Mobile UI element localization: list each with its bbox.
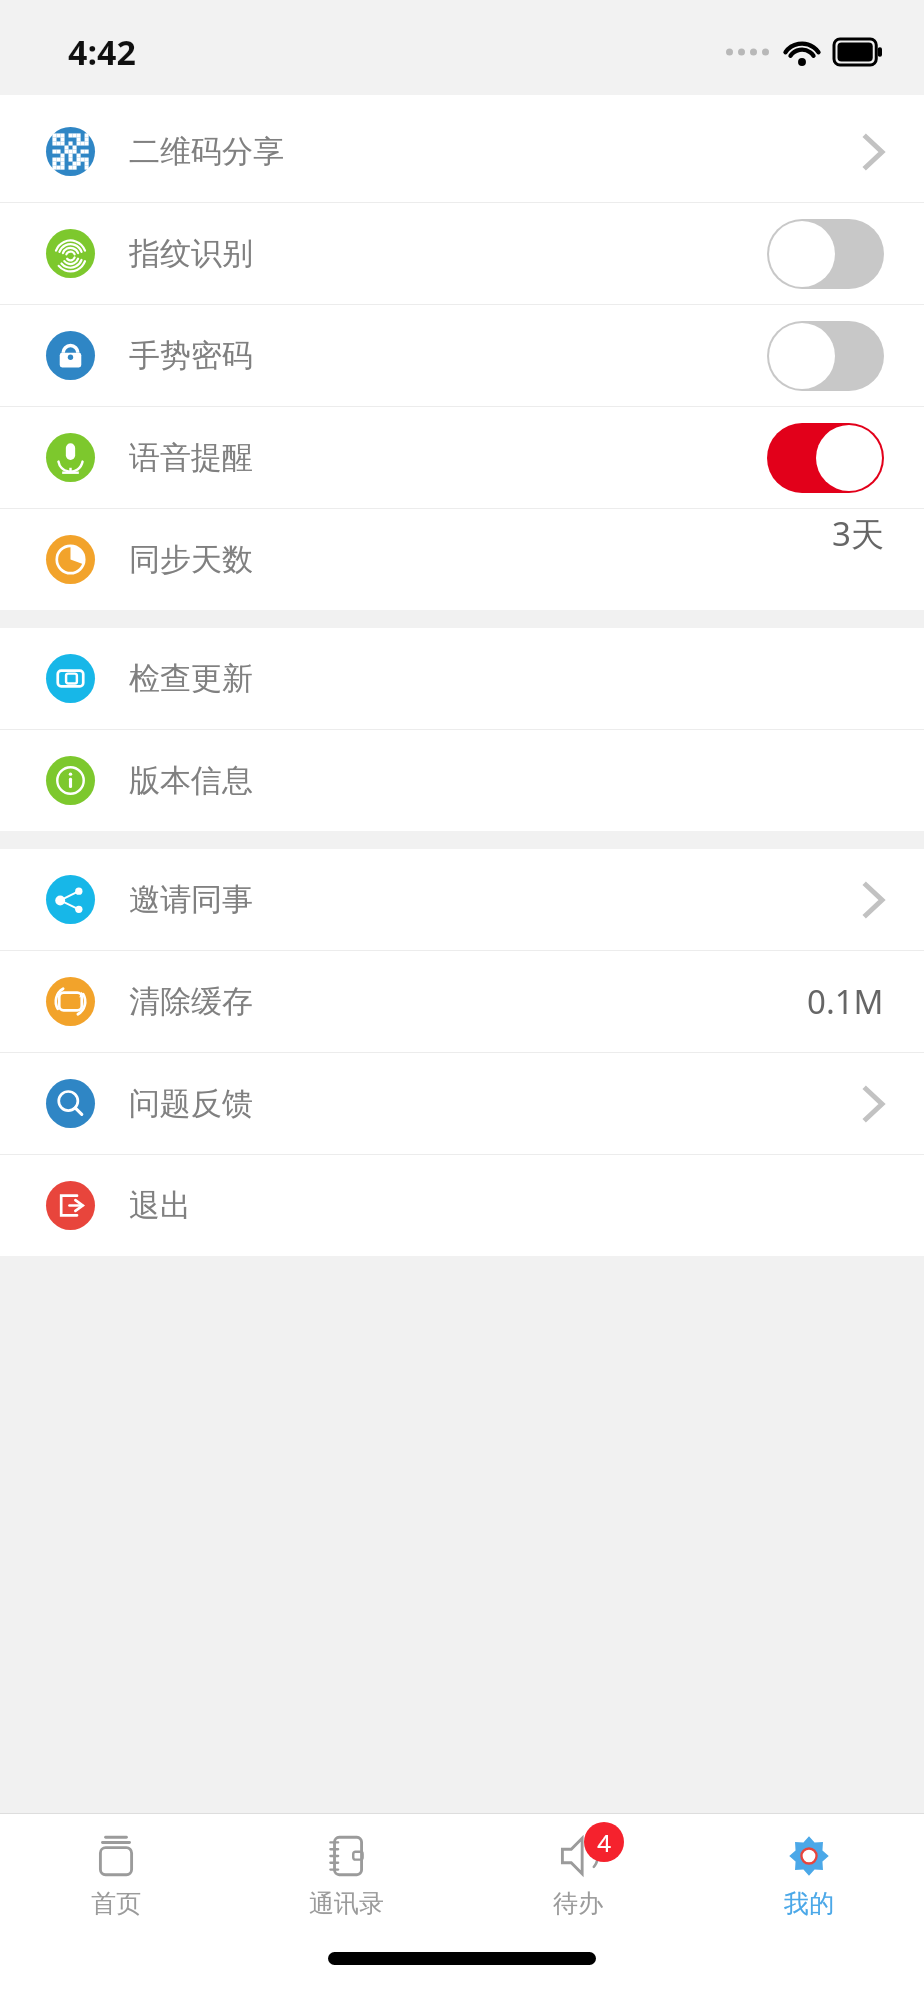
button[interactable]: 二维码分享 [0, 101, 924, 202]
staticText: 待办 [553, 1888, 603, 1919]
staticText: 检查更新 [129, 659, 253, 698]
button[interactable]: Toggle off [767, 219, 884, 289]
button[interactable]: 同步天数 [0, 509, 924, 610]
staticText: 手势密码 [129, 336, 253, 375]
staticText: 版本信息 [129, 761, 253, 800]
staticText: 语音提醒 [129, 438, 253, 477]
button[interactable]: 语音提醒 [0, 407, 924, 508]
staticText: 3天 [832, 511, 884, 556]
staticText: 4 [597, 1826, 611, 1859]
staticText: 通讯录 [309, 1888, 384, 1919]
button[interactable]: 手势密码 [0, 305, 924, 406]
staticText: 同步天数 [129, 540, 253, 579]
button[interactable]: 邀请同事 [0, 849, 924, 950]
staticText: 4:42 [68, 29, 136, 75]
staticText: 问题反馈 [129, 1084, 253, 1123]
staticText: 0.1M [807, 979, 884, 1024]
staticText: 退出 [129, 1186, 191, 1225]
staticText: 指纹识别 [129, 234, 253, 273]
button[interactable]: 指纹识别 [0, 203, 924, 304]
button[interactable]: Toggle on [767, 423, 884, 493]
button[interactable]: 通讯录 [231, 1814, 462, 1952]
button[interactable]: 问题反馈 [0, 1053, 924, 1154]
button[interactable]: 首页 [0, 1814, 231, 1952]
button[interactable]: Toggle off [767, 321, 884, 391]
button[interactable]: 4 [462, 1814, 693, 1952]
staticText: 邀请同事 [129, 880, 253, 919]
button[interactable]: 版本信息 [0, 730, 924, 831]
button[interactable]: 我的 [693, 1814, 924, 1952]
staticText: 首页 [91, 1888, 141, 1919]
staticText: 清除缓存 [129, 982, 253, 1021]
button[interactable]: 清除缓存 [0, 951, 924, 1052]
button[interactable]: 退出 [0, 1155, 924, 1256]
staticText: 我的 [784, 1888, 834, 1919]
staticText: 二维码分享 [129, 132, 284, 171]
button[interactable]: 检查更新 [0, 628, 924, 729]
